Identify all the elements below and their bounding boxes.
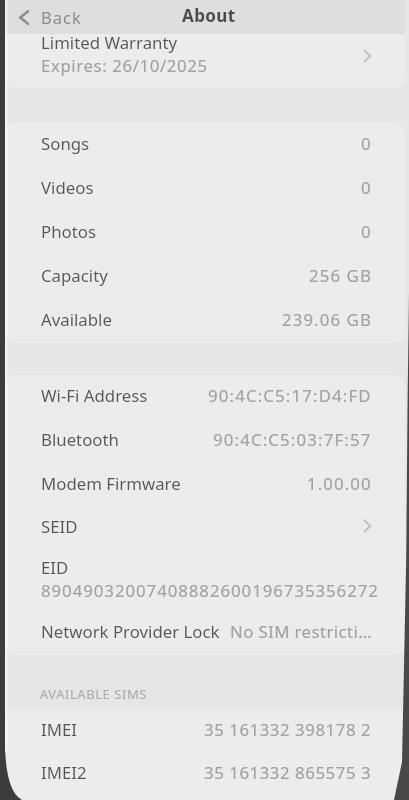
staticText: Videos [41,176,94,199]
staticText: No SIM restricti… [230,620,372,643]
staticText: 256 GB [309,264,372,287]
staticText: Capacity [41,264,108,287]
button[interactable]: SEID [5,504,405,548]
button[interactable]: Bluetooth [5,417,405,461]
staticText: Network Provider Lock [41,620,220,643]
staticText: SEID [41,515,78,538]
staticText: Expires: 26/10/2025 [41,54,208,77]
other: More [363,519,372,533]
button[interactable]: Capacity [5,253,405,297]
staticText: IMEI [41,718,77,741]
staticText: 35 161332 398178 2 [204,718,372,741]
button[interactable]: IMEI [5,709,405,751]
button[interactable]: Videos [5,165,405,209]
button[interactable]: Network Provider Lock [5,609,405,653]
staticText: Photos [41,220,96,243]
button[interactable]: Back [14,1,87,33]
staticText: Back [41,6,82,28]
staticText: AVAILABLE SIMS [40,685,147,703]
staticText: Bluetooth [41,428,119,451]
staticText: 1.00.00 [307,472,372,495]
staticText: About [182,4,236,27]
button[interactable]: IMEI2 [5,750,405,794]
staticText: Limited Warranty [41,31,178,54]
button[interactable]: Available [5,297,405,341]
staticText: 90:4C:C5:03:7F:57 [213,428,372,451]
staticText: 89049032007408882600196735356272 [41,579,379,602]
staticText: EID [41,556,69,579]
staticText: Modem Firmware [41,472,181,495]
staticText: 0 [361,220,372,243]
staticText: 90:4C:C5:17:D4:FD [208,384,372,407]
staticText: Wi-Fi Address [41,384,148,407]
button[interactable]: Photos [5,209,405,253]
button[interactable]: Modem Firmware [5,461,405,505]
button[interactable]: Wi-Fi Address [5,375,405,417]
other: More [363,49,372,63]
staticText: Available [41,308,112,331]
staticText: 239.06 GB [282,308,372,331]
staticText: 0 [361,176,372,199]
staticText: 35 161332 865575 3 [204,761,372,784]
staticText: IMEI2 [41,761,87,784]
staticText: Songs [41,132,90,155]
button[interactable]: Songs [5,122,405,165]
staticText: 0 [361,132,372,155]
